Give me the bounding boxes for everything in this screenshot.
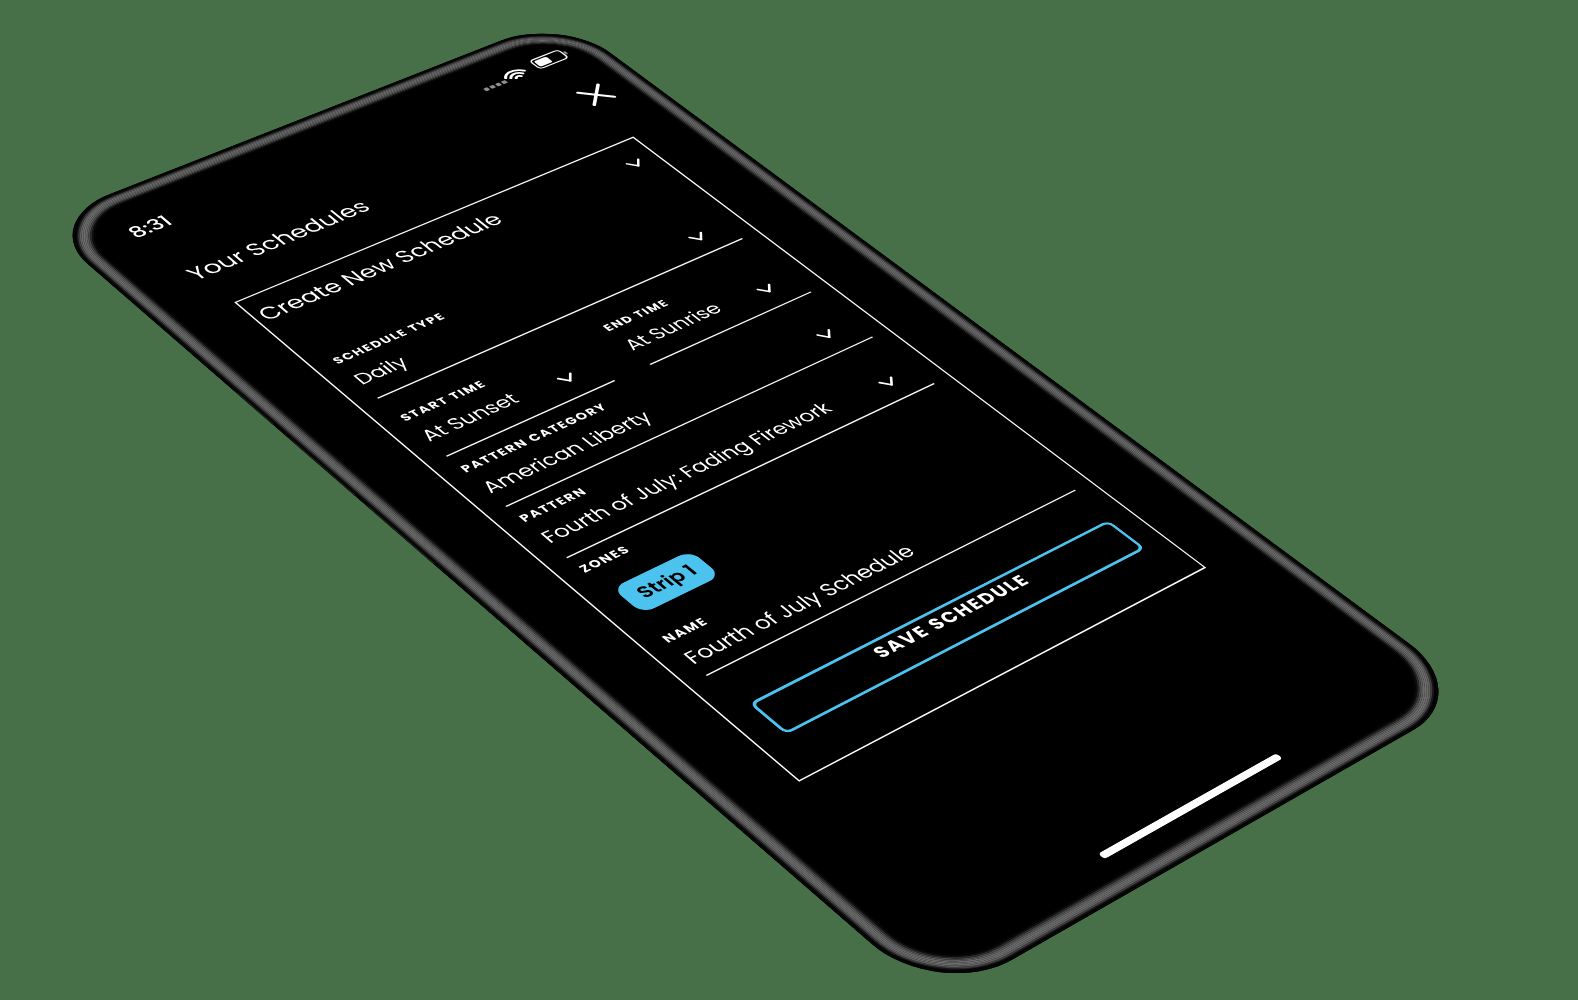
button[interactable]: SAVE SCHEDULE [748, 520, 1146, 735]
staticText: Fourth of July: Fading Firework [534, 397, 839, 548]
staticText: Strip 1 [629, 559, 705, 604]
button[interactable]: Close [561, 75, 632, 115]
staticText: NAME [657, 613, 713, 646]
staticText: PATTERN [514, 484, 592, 525]
staticText: At Sunset [414, 388, 527, 446]
staticText: PATTERN CATEGORY [456, 399, 613, 476]
button[interactable] [513, 343, 936, 559]
staticText: START TIME [395, 377, 491, 424]
staticText: Create New Schedule [249, 207, 510, 325]
button[interactable] [394, 338, 616, 458]
staticText: Daily [347, 352, 416, 390]
staticText: END TIME [599, 296, 675, 334]
staticText: American Liberty [475, 406, 659, 498]
staticText: Fourth of July Schedule [676, 540, 923, 670]
staticText: ZONES [574, 542, 636, 576]
staticText: 8:31 [121, 211, 179, 243]
button[interactable] [597, 252, 813, 366]
button[interactable] [455, 298, 874, 508]
staticText: SCHEDULE TYPE [328, 309, 450, 367]
staticText: Your Schedules [179, 195, 378, 286]
button[interactable] [656, 452, 1077, 677]
staticText: At Sunrise [617, 298, 729, 355]
button[interactable]: Strip 1 [612, 550, 721, 614]
staticText: SAVE SCHEDULE [867, 569, 1038, 664]
button[interactable] [327, 199, 744, 400]
